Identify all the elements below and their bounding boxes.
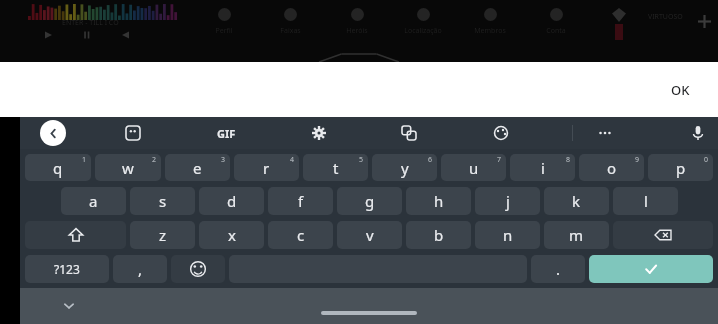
button[interactable]: f [268, 187, 333, 215]
button[interactable]: x [199, 221, 264, 249]
button[interactable]: j [475, 187, 540, 215]
button[interactable]: OK [657, 73, 704, 107]
staticText: VIRTUOSO [648, 12, 683, 22]
button[interactable]: q [25, 154, 91, 181]
button[interactable]: Shift [25, 221, 126, 249]
staticText: e [193, 158, 202, 178]
button[interactable]: v [337, 221, 402, 249]
staticText: GIF [217, 126, 236, 141]
staticText: o [607, 158, 617, 178]
staticText: ?123 [54, 261, 80, 277]
staticText: r [263, 158, 270, 178]
staticText: x [228, 225, 236, 245]
staticText: 3 [221, 155, 226, 165]
button[interactable]: z [130, 221, 195, 249]
button[interactable]: Play/Pause [80, 28, 94, 42]
button[interactable]: Hide keyboard [56, 293, 82, 319]
staticText: 4 [290, 155, 295, 165]
staticText: Membros [474, 26, 506, 36]
staticText: 8 [566, 155, 571, 165]
button[interactable]: g [337, 187, 402, 215]
staticText: 7 [497, 155, 502, 165]
button[interactable]: u [441, 154, 506, 181]
staticText: v [366, 225, 374, 245]
button[interactable]: Gem [612, 8, 626, 22]
button[interactable]: o [579, 154, 644, 181]
staticText: 5 [359, 155, 364, 165]
button[interactable]: Back [40, 120, 66, 146]
button[interactable]: More [590, 118, 620, 148]
button[interactable]: ?123 [25, 255, 109, 283]
button[interactable]: Backspace [613, 221, 713, 249]
button[interactable]: b [406, 221, 471, 249]
button[interactable]: Membros [457, 0, 523, 62]
staticText: OK [671, 81, 690, 99]
staticText: g [365, 191, 375, 211]
staticText: . [556, 259, 561, 279]
staticText: Localização [404, 26, 442, 36]
staticText: z [159, 225, 167, 245]
button[interactable]: Stickers [118, 118, 148, 148]
staticText: ENTER - TILL I CO [62, 18, 119, 28]
button[interactable]: Faixas [257, 0, 323, 62]
button[interactable]: Translate [394, 118, 424, 148]
staticText: u [469, 158, 479, 178]
staticText: k [572, 191, 581, 211]
button[interactable]: i [510, 154, 575, 181]
button[interactable]: l [613, 187, 678, 215]
staticText: y [401, 158, 409, 178]
staticText: 1 [82, 155, 87, 165]
button[interactable]: s [130, 187, 195, 215]
button[interactable]: m [544, 221, 609, 249]
button[interactable]: t [303, 154, 368, 181]
button[interactable]: Enter [589, 255, 713, 283]
button[interactable]: Themes [486, 118, 516, 148]
staticText: 6 [428, 155, 433, 165]
staticText: b [434, 225, 444, 245]
button[interactable]: , [113, 255, 167, 283]
staticText: Perfil [215, 26, 233, 36]
button[interactable]: Voice input [683, 118, 713, 148]
button[interactable]: Previous [40, 28, 54, 42]
staticText: t [333, 158, 339, 178]
staticText: d [227, 191, 237, 211]
staticText: Heróis [346, 26, 368, 36]
button[interactable]: Add [697, 14, 712, 29]
staticText: w [122, 158, 134, 178]
button[interactable]: d [199, 187, 264, 215]
button[interactable]: GIF [211, 118, 241, 148]
staticText: 2 [152, 155, 157, 165]
staticText: 9 [635, 155, 640, 165]
button[interactable]: h [406, 187, 471, 215]
staticText: i [541, 158, 545, 178]
button[interactable]: y [372, 154, 437, 181]
staticText: a [89, 191, 98, 211]
button[interactable]: a [61, 187, 126, 215]
staticText: n [503, 225, 513, 245]
staticText: 0 [704, 155, 709, 165]
staticText: Faixas [280, 26, 301, 36]
button[interactable]: c [268, 221, 333, 249]
button[interactable]: Emoji [171, 255, 225, 283]
button[interactable]: Settings [304, 118, 334, 148]
button[interactable]: k [544, 187, 609, 215]
button[interactable]: r [234, 154, 299, 181]
staticText: , [138, 259, 143, 279]
staticText: Conta [546, 26, 566, 36]
button[interactable]: p [648, 154, 713, 181]
staticText: m [569, 225, 584, 245]
button[interactable]: . [531, 255, 585, 283]
button[interactable]: w [95, 154, 161, 181]
button[interactable]: Localização [390, 0, 456, 62]
staticText: h [434, 191, 444, 211]
button[interactable]: Heróis [324, 0, 390, 62]
staticText: s [159, 191, 167, 211]
button[interactable]: Next [120, 28, 134, 42]
button[interactable]: e [165, 154, 230, 181]
button[interactable]: Perfil [191, 0, 257, 62]
button[interactable]: n [475, 221, 540, 249]
button[interactable]: Conta [523, 0, 589, 62]
staticText: l [644, 191, 648, 211]
staticText: p [676, 158, 686, 178]
